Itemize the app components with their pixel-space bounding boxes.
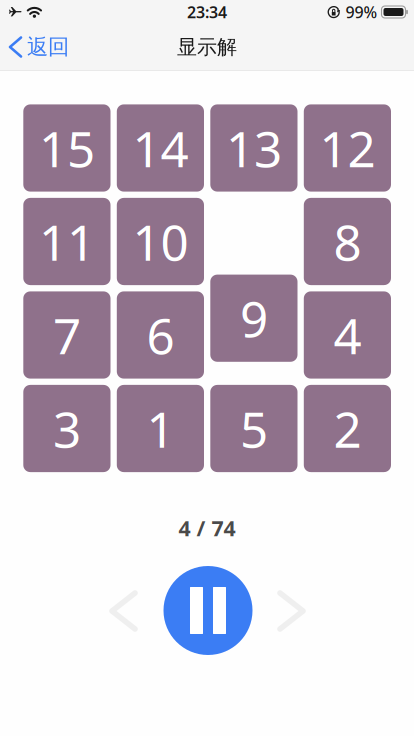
staticText: 2	[333, 396, 361, 461]
staticText: 4 / 74	[178, 514, 235, 542]
staticText: 6	[146, 302, 174, 368]
staticText: 11	[39, 209, 95, 274]
staticText: 7	[53, 302, 81, 368]
button[interactable]: Previous move	[100, 581, 147, 641]
staticText: 14	[132, 115, 188, 181]
staticText: 23:34	[187, 1, 227, 23]
staticText: 返回	[27, 34, 69, 60]
staticText: 3	[53, 396, 81, 461]
button[interactable]: Pause	[163, 566, 252, 655]
staticText: 12	[319, 115, 375, 181]
staticText: 13	[226, 115, 282, 181]
staticText: 5	[240, 396, 268, 461]
staticText: 4	[333, 302, 361, 368]
button[interactable]: 返回	[8, 28, 71, 66]
button[interactable]: Next move	[268, 581, 315, 641]
staticText: 8	[333, 209, 361, 274]
staticText: 99%	[345, 1, 377, 23]
staticText: 1	[146, 396, 174, 461]
staticText: 9	[240, 285, 268, 351]
staticText: 显示解	[177, 35, 237, 59]
staticText: 10	[132, 209, 188, 274]
staticText: 15	[39, 115, 95, 181]
